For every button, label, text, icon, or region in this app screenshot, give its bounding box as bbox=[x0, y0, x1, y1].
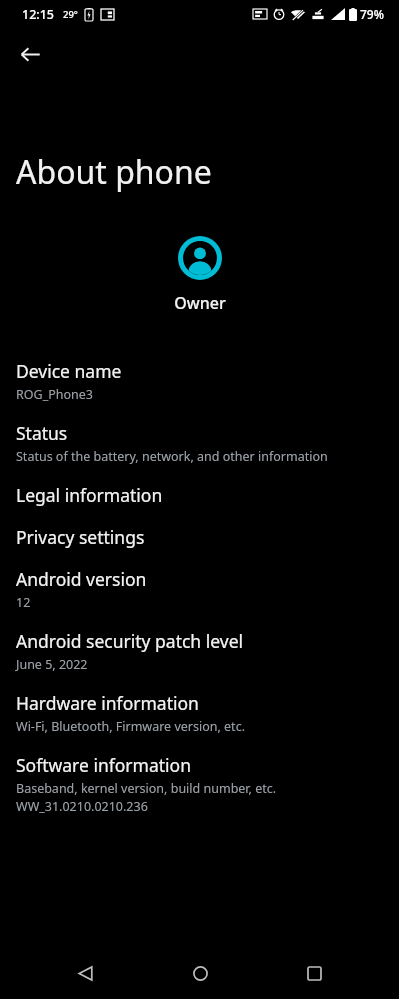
staticText: About phone bbox=[16, 150, 212, 194]
staticText: Android version bbox=[16, 567, 147, 591]
staticText: Hardware information bbox=[16, 691, 199, 715]
staticText: Legal information bbox=[16, 483, 163, 507]
staticText: 79% bbox=[360, 6, 384, 22]
staticText: Privacy settings bbox=[16, 525, 145, 549]
staticText: Status bbox=[16, 421, 68, 445]
staticText: Status of the battery, network, and othe… bbox=[16, 448, 328, 465]
button[interactable]: Android security patch level bbox=[0, 620, 399, 682]
staticText: June 5, 2022 bbox=[16, 656, 88, 673]
button[interactable]: Software information bbox=[0, 744, 399, 824]
staticText: 12:15 bbox=[22, 6, 55, 23]
staticText: Android security patch level bbox=[16, 629, 244, 653]
button[interactable]: Privacy settings bbox=[0, 516, 399, 558]
button[interactable]: Recent apps bbox=[285, 947, 343, 999]
staticText: Owner bbox=[174, 292, 226, 314]
staticText: Baseband, kernel version, build number, … bbox=[16, 780, 277, 797]
staticText: WW_31.0210.0210.236 bbox=[16, 798, 148, 815]
staticText: 29° bbox=[63, 8, 78, 21]
button[interactable]: Home bbox=[171, 947, 229, 999]
button[interactable]: Back bbox=[56, 947, 114, 999]
staticText: Wi-Fi, Bluetooth, Firmware version, etc. bbox=[16, 718, 245, 735]
button[interactable]: Device name bbox=[0, 350, 399, 412]
staticText: Software information bbox=[16, 753, 191, 777]
button[interactable]: Status bbox=[0, 412, 399, 474]
button[interactable]: Legal information bbox=[0, 474, 399, 516]
button[interactable]: Hardware information bbox=[0, 682, 399, 744]
staticText: Device name bbox=[16, 359, 122, 383]
staticText: 12 bbox=[16, 594, 31, 611]
button[interactable]: Android version bbox=[0, 558, 399, 620]
button[interactable]: Back bbox=[8, 32, 52, 76]
staticText: ROG_Phone3 bbox=[16, 386, 93, 403]
